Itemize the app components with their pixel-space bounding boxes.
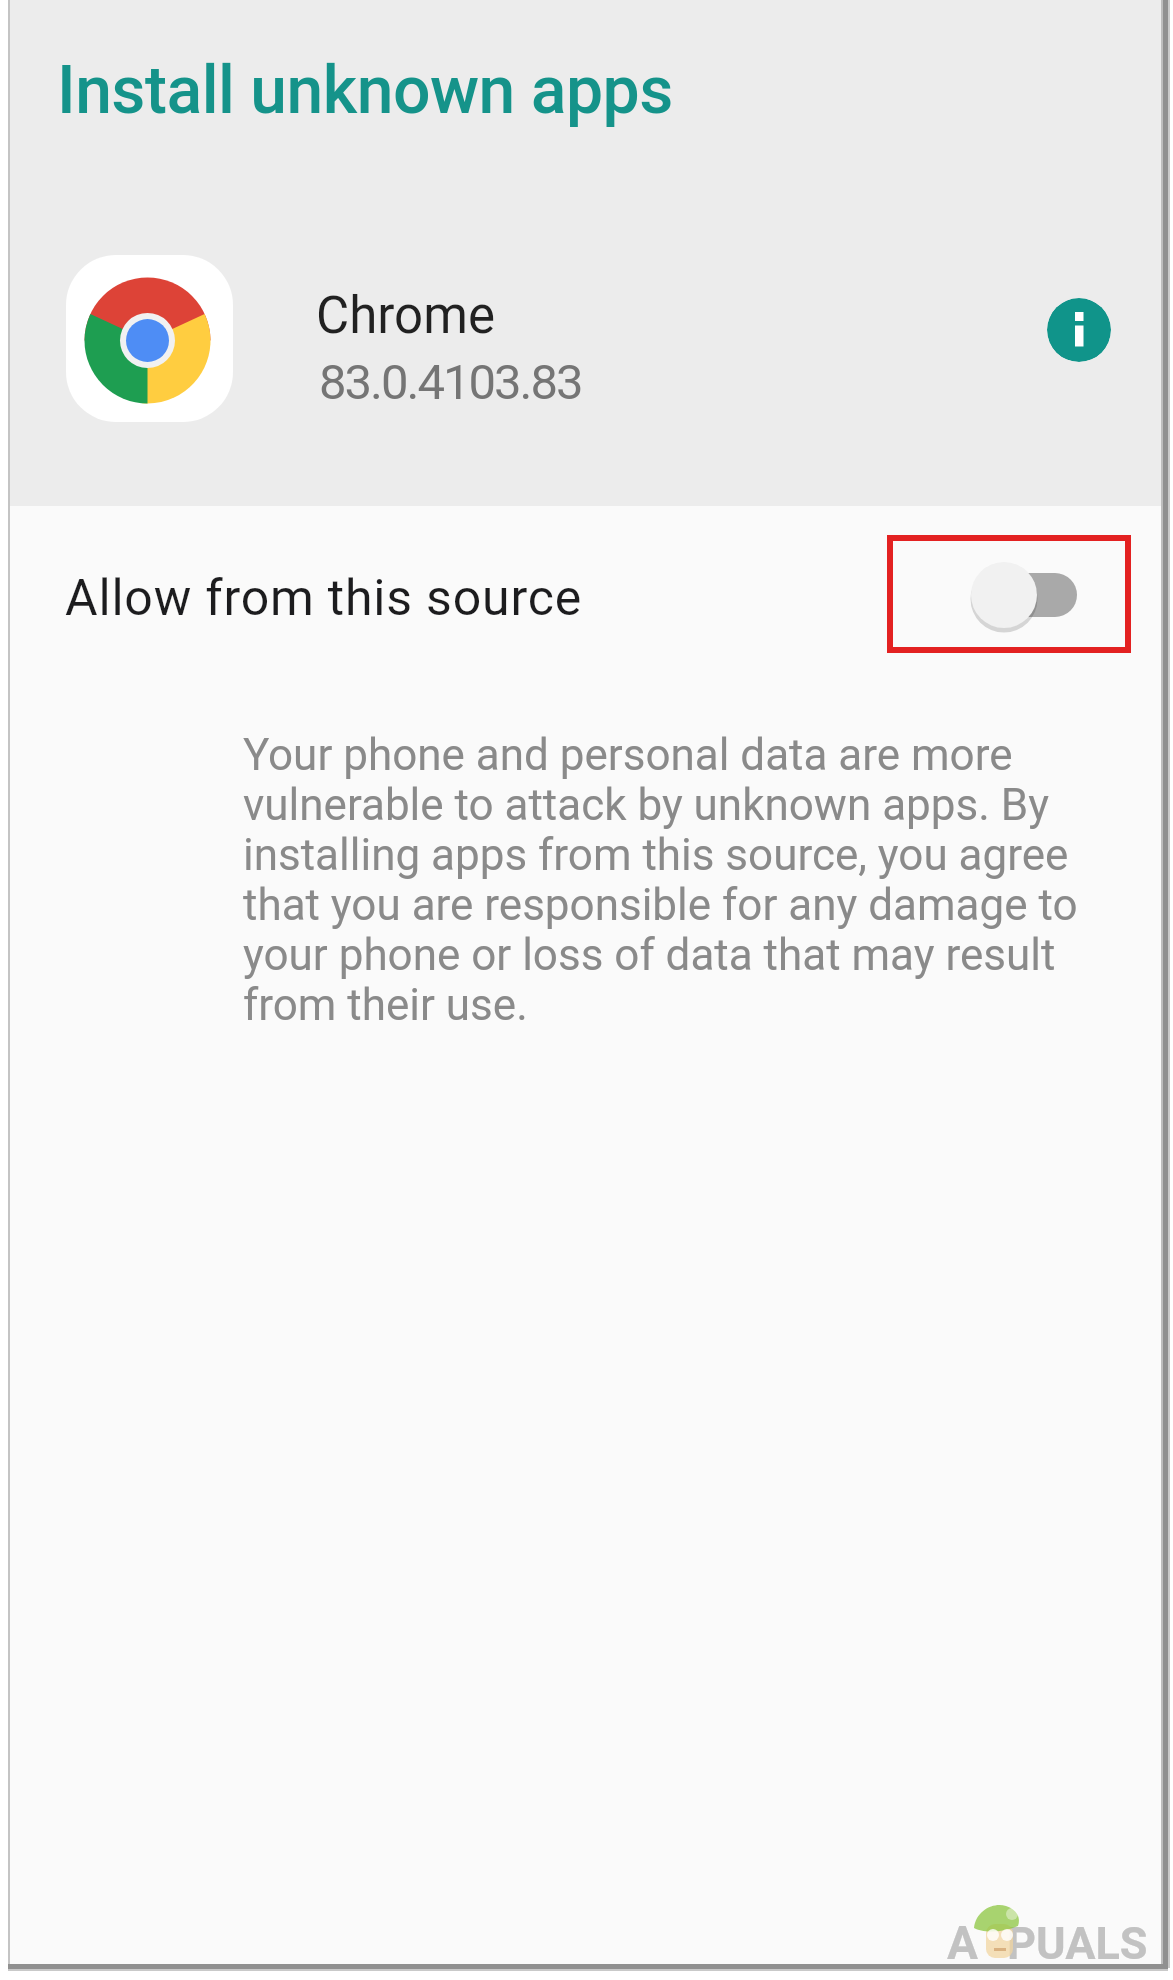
staticText: Allow from this source bbox=[65, 569, 582, 628]
button[interactable] bbox=[1047, 298, 1111, 362]
staticText: 83.0.4103.83 bbox=[319, 354, 582, 411]
staticText: Install unknown apps bbox=[57, 52, 673, 129]
staticText: A bbox=[947, 1916, 978, 1970]
button[interactable]: Allow from this source bbox=[10, 506, 1162, 681]
button[interactable] bbox=[66, 255, 233, 422]
staticText: Your phone and personal data are more vu… bbox=[243, 729, 1078, 1030]
staticText: Chrome bbox=[316, 286, 495, 346]
staticText: PUALS bbox=[1007, 1917, 1148, 1970]
